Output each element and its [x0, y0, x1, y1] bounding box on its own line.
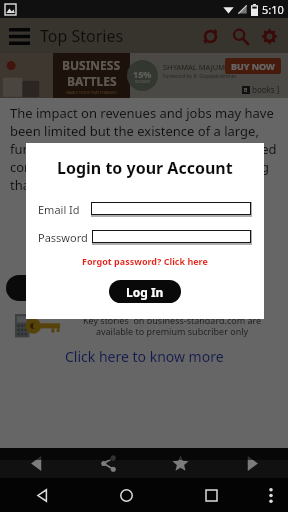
staticText: Click here to know more	[65, 347, 224, 366]
button[interactable]: Log In	[109, 280, 181, 303]
staticText: BUY NOW	[231, 60, 275, 72]
staticText: B	[244, 87, 248, 94]
staticText: Password	[38, 230, 88, 245]
staticText: Key stories on business-standard.com are…	[68, 314, 276, 338]
staticText: BATTLES	[67, 73, 117, 89]
staticText: Email Id	[38, 202, 80, 217]
button[interactable]: Settings	[255, 21, 283, 51]
staticText: Foreword by R. Gopalakrishnan	[163, 73, 237, 80]
staticText: 15%	[133, 68, 152, 80]
button[interactable]: Home	[84, 478, 169, 512]
button[interactable]: Previous	[0, 448, 72, 478]
button[interactable]: Open navigation menu	[7, 24, 31, 48]
button[interactable]: L...	[6, 275, 62, 301]
button[interactable]: Favourite	[144, 448, 216, 478]
staticText: Top Stories	[40, 25, 124, 47]
button[interactable]: Share	[72, 448, 144, 478]
button[interactable]: Forgot password? Click here	[78, 254, 212, 268]
staticText: 5:10	[262, 2, 284, 17]
staticText: BUSINESS	[62, 57, 121, 73]
button[interactable]: Search	[225, 21, 255, 51]
button[interactable]: Back	[0, 478, 84, 512]
staticText: The impact on revenues and jobs may have…	[10, 104, 278, 194]
staticText: Log In	[126, 284, 164, 300]
button[interactable]: Password input	[92, 230, 251, 243]
button[interactable]: Next	[216, 448, 288, 478]
staticText: Forgot password? Click here	[82, 255, 208, 267]
button[interactable]: Advertisement	[0, 53, 288, 98]
staticText: FAMILY FEUDS THAT CHANGED	[66, 90, 117, 95]
button[interactable]: Refresh	[195, 21, 225, 51]
staticText: SHYAMAL MAJUMDAR	[163, 62, 240, 72]
staticText: DISCOUNT	[135, 80, 151, 84]
button[interactable]: Email Id input	[91, 202, 251, 215]
button[interactable]: Recent apps	[169, 478, 254, 512]
button[interactable]: More options	[254, 478, 288, 512]
button[interactable]: Click here to know more	[0, 347, 288, 366]
button[interactable]: BUY NOW	[225, 58, 281, 74]
staticText: Login to your Account	[57, 157, 233, 179]
staticText: books ]	[252, 84, 280, 95]
